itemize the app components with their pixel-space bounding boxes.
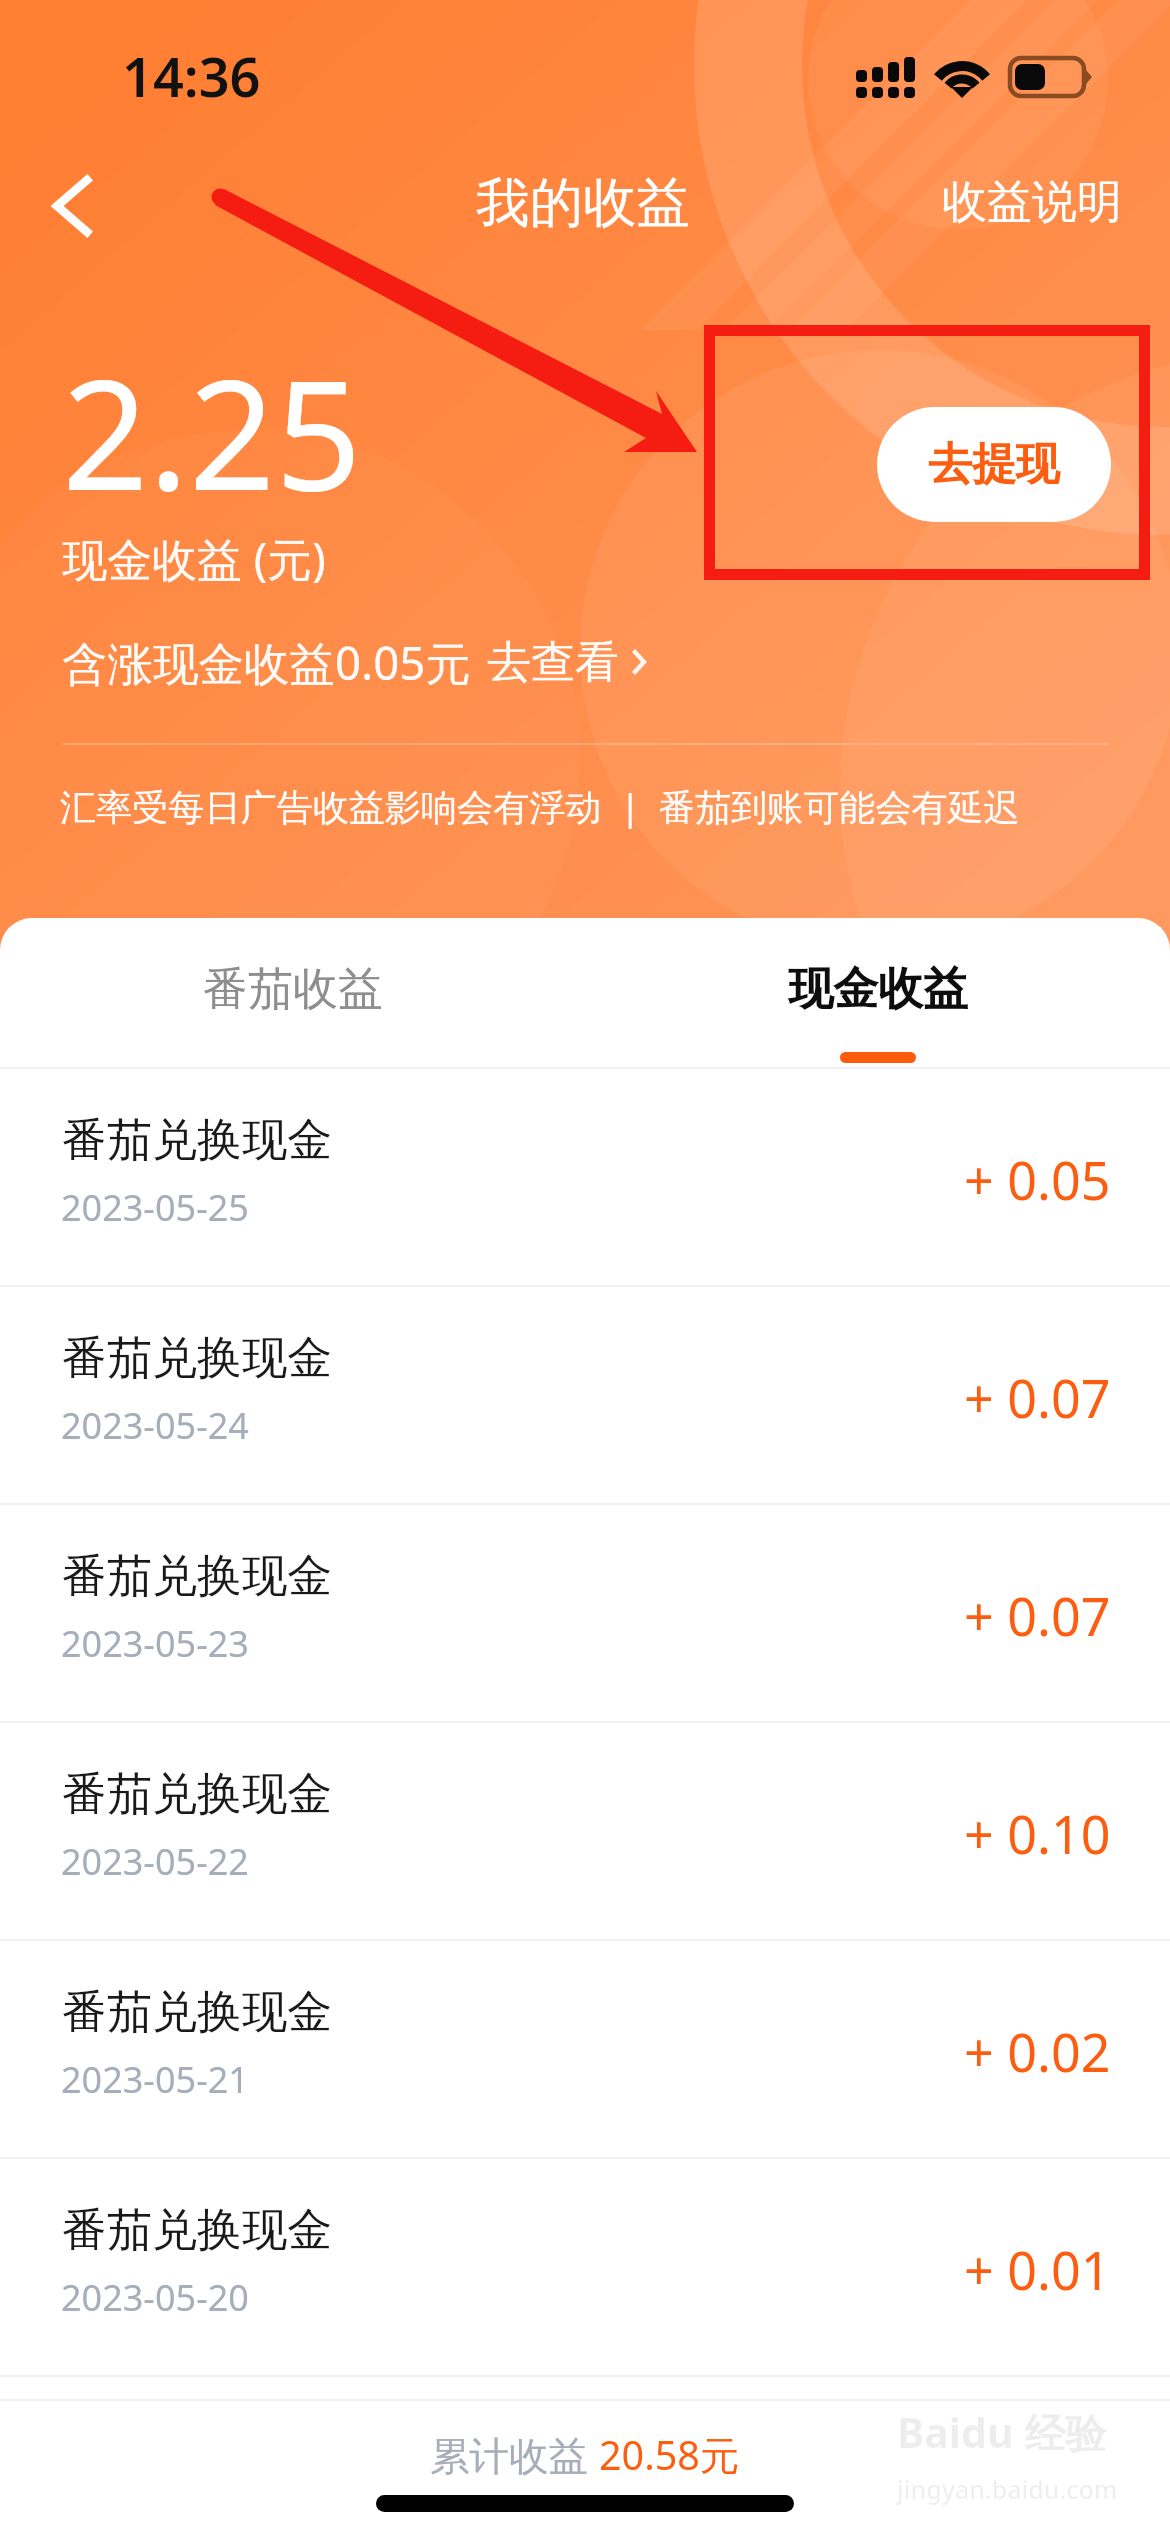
button[interactable]: 含涨现金收益0.05元: [62, 631, 647, 693]
staticText: + 0.07: [964, 1580, 1111, 1651]
staticText: 番茄兑换现金: [62, 1984, 332, 2041]
button[interactable]: 番茄兑换现金: [0, 1505, 1170, 1723]
staticText: 番茄兑换现金: [62, 1548, 332, 1605]
staticText: 14:36: [122, 39, 261, 113]
staticText: 20.58元: [599, 2428, 740, 2482]
button[interactable]: 番茄兑换现金: [0, 1723, 1170, 1941]
staticText: + 0.02: [964, 2016, 1111, 2087]
button[interactable]: Back: [14, 150, 130, 262]
button[interactable]: 番茄兑换现金: [0, 1287, 1170, 1505]
staticText: 2023-05-21: [61, 2055, 249, 2104]
button[interactable]: 收益说明: [922, 160, 1142, 245]
staticText: 番茄兑换现金: [62, 1766, 332, 1823]
staticText: 2023-05-20: [61, 2273, 249, 2322]
staticText: 累计收益: [430, 2428, 599, 2482]
staticText: + 0.10: [964, 1798, 1111, 1869]
button[interactable]: 现金收益: [585, 918, 1170, 1069]
staticText: + 0.07: [964, 1362, 1111, 1433]
staticText: + 0.01: [964, 2234, 1111, 2305]
staticText: 收益说明: [942, 174, 1122, 231]
staticText: 现金收益: [788, 961, 968, 1018]
staticText: jingyan.baidu.com: [897, 2472, 1118, 2506]
button[interactable]: 去提现: [877, 407, 1111, 522]
staticText: 2023-05-24: [61, 1401, 249, 1450]
staticText: 番茄收益: [203, 961, 383, 1018]
staticText: + 0.05: [964, 1144, 1111, 1215]
button[interactable]: 番茄兑换现金: [0, 1069, 1170, 1287]
staticText: 去提现: [928, 437, 1060, 492]
staticText: 番茄兑换现金: [62, 2202, 332, 2259]
staticText: Baidu 经验: [897, 2404, 1107, 2460]
staticText: 2023-05-23: [61, 1619, 249, 1668]
staticText: 番茄兑换现金: [62, 1112, 332, 1169]
staticText: 2.25: [62, 329, 362, 535]
staticText: 现金收益 (元): [62, 528, 326, 589]
staticText: 含涨现金收益0.05元: [62, 631, 471, 693]
staticText: 2023-05-25: [61, 1183, 249, 1232]
button[interactable]: 番茄收益: [0, 918, 585, 1069]
staticText: 番茄兑换现金: [62, 1330, 332, 1387]
staticText: 去查看: [487, 635, 619, 690]
button[interactable]: 番茄兑换现金: [0, 2159, 1170, 2377]
button[interactable]: 番茄兑换现金: [0, 1941, 1170, 2159]
staticText: 2023-05-22: [61, 1837, 249, 1886]
staticText: 我的收益: [476, 169, 690, 236]
staticText: 汇率受每日广告收益影响会有浮动 | 番茄到账可能会有延迟: [60, 781, 1020, 830]
